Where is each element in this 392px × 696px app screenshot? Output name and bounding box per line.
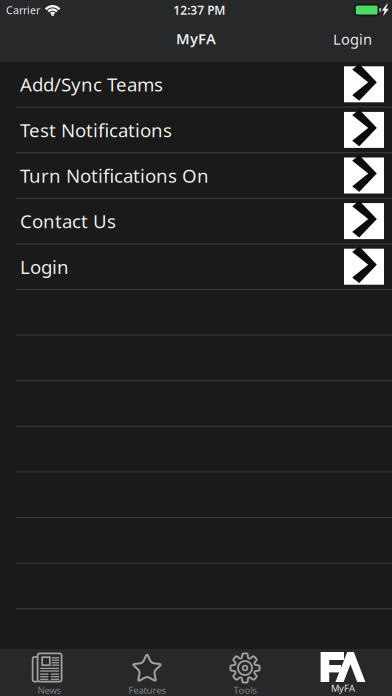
button[interactable]: Add/Sync Teams — [0, 62, 392, 108]
staticText: Login — [20, 254, 69, 279]
staticText: Turn Notifications On — [20, 163, 209, 188]
button[interactable]: Login — [0, 244, 392, 290]
button[interactable]: Tools — [196, 649, 294, 696]
staticText: Add/Sync Teams — [20, 72, 163, 97]
staticText: Contact Us — [20, 209, 116, 233]
button[interactable]: Test Notifications — [0, 108, 392, 153]
staticText: News — [37, 684, 60, 696]
staticText: Login — [333, 29, 372, 49]
staticText: Features — [128, 684, 165, 696]
staticText: Carrier — [6, 3, 40, 17]
staticText: Test Notifications — [20, 117, 172, 142]
staticText: Tools — [233, 684, 256, 696]
button[interactable]: Features — [98, 649, 196, 696]
button[interactable]: Login — [323, 23, 382, 59]
button[interactable]: Contact Us — [0, 199, 392, 244]
staticText: MyFA — [331, 682, 355, 694]
button[interactable]: Turn Notifications On — [0, 153, 392, 199]
staticText: MyFA — [176, 29, 216, 48]
button[interactable]: MyFA — [294, 649, 392, 696]
staticText: 12:37 PM — [173, 2, 225, 18]
button[interactable]: News — [0, 649, 98, 696]
